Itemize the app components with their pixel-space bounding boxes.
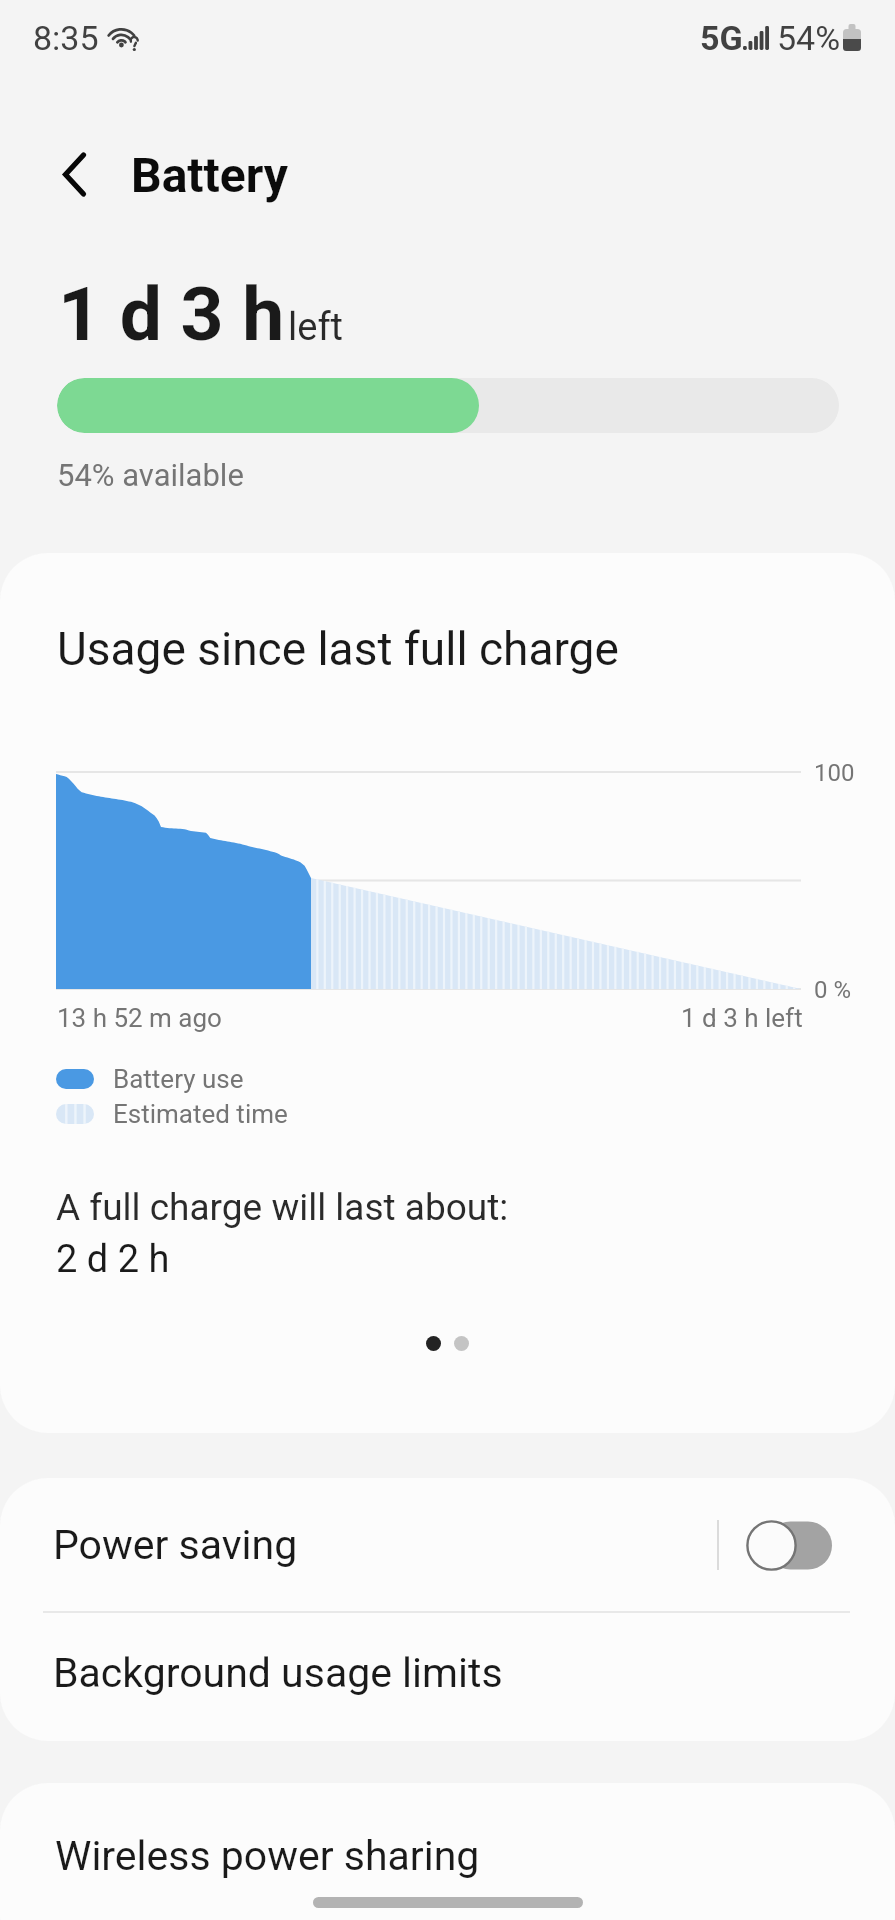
staticText: Power saving [53,1521,717,1569]
staticText: left [288,305,344,350]
button[interactable]: Background usage limits [0,1608,895,1737]
staticText: Battery use [113,1064,244,1094]
staticText: 100 [814,759,855,787]
staticText: Battery [131,147,288,203]
staticText: Background usage limits [53,1649,503,1697]
staticText: 1 d 3 h left [681,1003,803,1033]
staticText: 5G [700,18,743,58]
staticText: 54% available [57,457,244,493]
button[interactable]: Power saving toggle [746,1520,832,1571]
staticText: 1 d 3 h [58,270,285,358]
staticText: 2 d 2 h [56,1237,170,1282]
staticText: 54% [777,18,841,58]
staticText: Usage since last full charge [57,622,619,676]
staticText: A full charge will last about: [56,1186,509,1229]
button[interactable]: Power saving [0,1478,895,1612]
button[interactable]: Page 1 [426,1336,441,1351]
staticText: Estimated time [113,1099,288,1129]
button[interactable]: Back [43,142,111,210]
button[interactable]: Wireless power sharing [0,1783,895,1920]
button[interactable]: Page 2 [454,1336,469,1351]
staticText: Wireless power sharing [55,1832,480,1880]
staticText: 13 h 52 m ago [57,1003,222,1033]
staticText: 8:35 [33,18,99,58]
staticText: 0 % [814,976,852,1004]
